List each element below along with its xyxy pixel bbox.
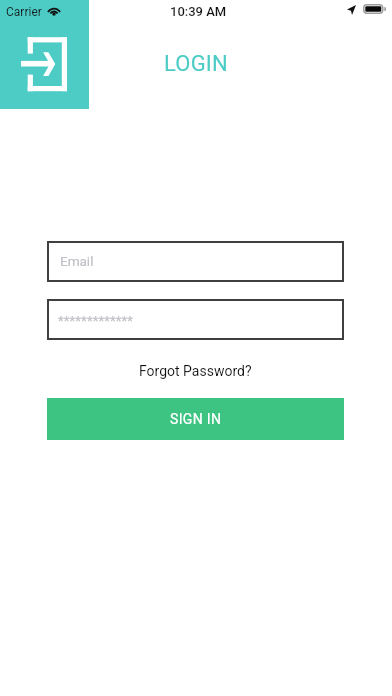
button[interactable]: SIGN IN	[47, 398, 344, 440]
staticText: LOGIN	[164, 51, 228, 77]
button[interactable]: Email	[47, 241, 344, 282]
staticText: Email	[60, 253, 94, 269]
button[interactable]: *************	[47, 299, 344, 340]
staticText: 10:39 AM	[170, 4, 227, 19]
staticText: Forgot Password?	[139, 363, 252, 379]
staticText: *************	[58, 313, 134, 328]
staticText: SIGN IN	[170, 411, 222, 427]
button[interactable]: Login	[0, 0, 89, 109]
button[interactable]: Forgot Password?	[133, 361, 258, 381]
staticText: Carrier	[6, 5, 42, 19]
